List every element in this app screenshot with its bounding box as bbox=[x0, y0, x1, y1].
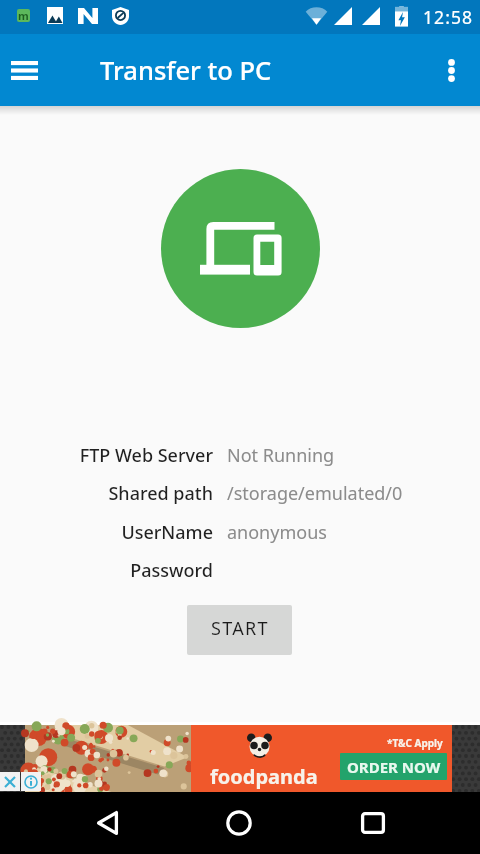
staticText: START bbox=[211, 616, 269, 641]
staticText: Password bbox=[130, 558, 213, 583]
staticText: anonymous bbox=[227, 520, 327, 545]
button[interactable]: More options bbox=[427, 46, 475, 94]
staticText: *T&C Apply bbox=[387, 736, 443, 750]
staticText: foodpanda bbox=[210, 763, 318, 790]
staticText: 12:58 bbox=[423, 5, 474, 29]
staticText: FTP Web Server bbox=[79, 443, 213, 468]
staticText: Transfer to PC bbox=[100, 53, 272, 88]
button[interactable]: foodpanda bbox=[191, 725, 452, 792]
button[interactable]: START bbox=[187, 605, 292, 655]
staticText: m bbox=[18, 9, 29, 21]
button[interactable]: Recent apps bbox=[333, 792, 413, 854]
button[interactable]: Back bbox=[67, 792, 147, 854]
button[interactable]: Home bbox=[199, 792, 279, 854]
button[interactable]: Devices bbox=[161, 169, 320, 328]
button[interactable]: Close ad bbox=[0, 772, 20, 791]
staticText: UserName bbox=[121, 520, 213, 545]
staticText: Shared path bbox=[108, 481, 213, 506]
staticText: ORDER NOW bbox=[347, 757, 441, 777]
button[interactable]: Ad information bbox=[21, 772, 41, 791]
staticText: Not Running bbox=[227, 443, 335, 468]
button[interactable]: ORDER NOW bbox=[340, 753, 447, 780]
button[interactable]: Open navigation menu bbox=[0, 42, 52, 98]
staticText: /storage/emulated/0 bbox=[227, 481, 403, 506]
